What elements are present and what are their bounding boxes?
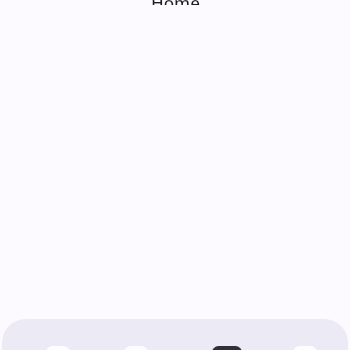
button[interactable]: Search: [124, 346, 148, 350]
button[interactable]: Profile: [293, 346, 317, 350]
button[interactable]: Home: [46, 346, 70, 350]
staticText: Home: [151, 0, 200, 5]
button[interactable]: Library: [212, 346, 242, 350]
